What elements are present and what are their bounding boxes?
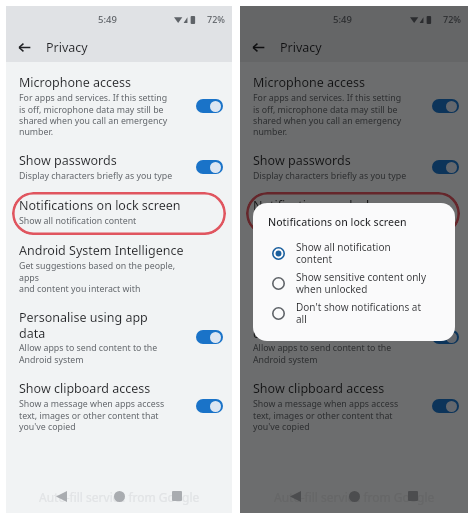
staticText: Get suggestions based on the people, app… xyxy=(253,260,430,294)
staticText: Show a message when apps access text, im… xyxy=(19,398,165,432)
staticText: Notifications on lock screen xyxy=(253,197,415,214)
button[interactable]: Toggle Personalise using app data xyxy=(194,327,224,347)
staticText: Microphone access xyxy=(19,74,132,91)
staticText: Show passwords xyxy=(253,152,351,169)
staticText: Personalise using app data xyxy=(19,309,148,341)
button[interactable]: Toggle Personalise using app data xyxy=(430,327,460,347)
staticText: Notifications on lock screen xyxy=(19,197,181,214)
staticText: For apps and services. If this setting i… xyxy=(19,92,168,137)
button[interactable]: Back xyxy=(248,37,268,57)
button[interactable]: Toggle Show clipboard access xyxy=(430,396,460,416)
button[interactable]: Android System Intelligence xyxy=(240,234,468,301)
button[interactable]: Android System Intelligence xyxy=(6,234,232,301)
button[interactable]: Microphone access xyxy=(6,66,232,144)
staticText: For apps and services. If this setting i… xyxy=(253,92,402,137)
staticText: Get suggestions based on the people, app… xyxy=(19,260,194,294)
staticText: Show clipboard access xyxy=(19,380,151,397)
button[interactable]: Personalise using app data xyxy=(240,301,468,372)
button[interactable]: Recents xyxy=(166,485,188,507)
button[interactable]: Toggle Show passwords xyxy=(430,157,460,177)
button[interactable]: Show clipboard access xyxy=(6,372,232,439)
staticText: Privacy xyxy=(46,39,88,56)
button[interactable]: Back xyxy=(14,37,34,57)
button[interactable]: Back xyxy=(50,485,72,507)
staticText: Show sensitive content only when unlocke… xyxy=(296,270,427,296)
button[interactable]: Home xyxy=(108,485,130,507)
staticText: Allow apps to send content to the Androi… xyxy=(19,342,158,365)
button[interactable]: Notifications on lock screen xyxy=(240,189,468,234)
button[interactable]: Toggle Show passwords xyxy=(194,157,224,177)
staticText: Auto-fill service from Google xyxy=(39,489,200,505)
staticText: Allow apps to send content to the Androi… xyxy=(253,342,392,365)
button[interactable]: Notifications on lock screen xyxy=(6,189,232,234)
staticText: 5:49 xyxy=(98,13,117,26)
button[interactable]: Home xyxy=(343,485,365,507)
staticText: Display characters briefly as you type xyxy=(253,170,407,182)
staticText: Show a message when apps access text, im… xyxy=(253,398,399,432)
button[interactable]: Personalise using app data xyxy=(6,301,232,372)
staticText: 72% xyxy=(207,13,225,25)
staticText: Android System Intelligence xyxy=(19,242,184,259)
button[interactable]: Show sensitive content only when unlocke… xyxy=(268,268,443,298)
button[interactable]: Show clipboard access xyxy=(240,372,468,439)
staticText: Don't show notifications at all xyxy=(296,300,422,326)
button[interactable]: Microphone access xyxy=(240,66,468,144)
staticText: Privacy xyxy=(280,39,322,56)
button[interactable]: Toggle Microphone access xyxy=(194,96,224,116)
staticText: Show clipboard access xyxy=(253,380,385,397)
button[interactable]: Don't show notifications at all xyxy=(268,298,443,328)
staticText: Show all notification content xyxy=(253,215,371,227)
staticText: Show all notification content xyxy=(19,215,137,227)
staticText: 72% xyxy=(443,13,461,25)
staticText: Display characters briefly as you type xyxy=(19,170,173,182)
staticText: Android System Intelligence xyxy=(253,242,418,259)
button[interactable]: Show passwords xyxy=(6,144,232,189)
staticText: Show all notification content xyxy=(296,240,391,266)
staticText: Auto-fill service from Google xyxy=(274,489,435,505)
staticText: 5:49 xyxy=(333,13,352,26)
staticText: Microphone access xyxy=(253,74,366,91)
button[interactable]: Back xyxy=(284,485,306,507)
button[interactable]: Toggle Microphone access xyxy=(430,96,460,116)
button[interactable]: Toggle Show clipboard access xyxy=(194,396,224,416)
button[interactable]: Show all notification content xyxy=(268,238,443,268)
staticText: Show passwords xyxy=(19,152,117,169)
staticText: Personalise using app data xyxy=(253,309,382,341)
staticText: Notifications on lock screen xyxy=(268,215,407,229)
button[interactable]: Recents xyxy=(402,485,424,507)
button[interactable]: Show passwords xyxy=(240,144,468,189)
